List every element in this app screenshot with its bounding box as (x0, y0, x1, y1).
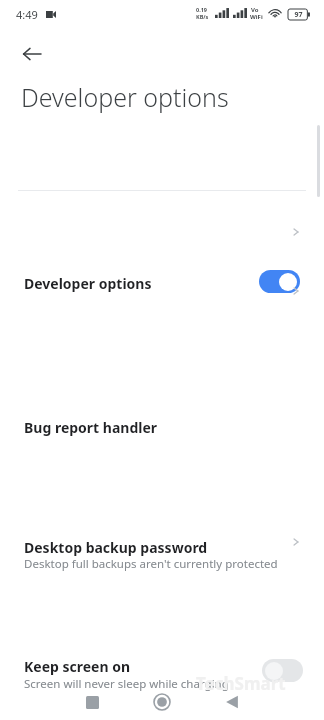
staticText: WiFi (250, 13, 263, 21)
button[interactable]: Desktop backup password (0, 262, 324, 320)
staticText: Developer options (21, 80, 229, 114)
button[interactable]: Back (14, 36, 50, 72)
staticText: 97 (294, 10, 303, 20)
staticText: Keep screen on (24, 657, 131, 676)
button[interactable]: Recents (74, 684, 110, 720)
button[interactable]: Developer options toggle, on (259, 270, 300, 293)
button[interactable]: Back (214, 684, 250, 720)
staticText: Bug report handler (24, 418, 158, 437)
staticText: Desktop full backups aren't currently pr… (24, 556, 278, 572)
staticText: Developer options (24, 274, 152, 293)
staticText: Screen will never sleep while charging (24, 676, 229, 692)
staticText: TechSmart (196, 672, 286, 695)
button[interactable]: Developer options (0, 128, 324, 180)
staticText: KB/s (196, 13, 209, 20)
button[interactable]: Bluetooth HCI snoop log filtering (0, 518, 324, 560)
button[interactable]: Skip screen lock (0, 386, 324, 454)
button[interactable]: Home (144, 684, 180, 720)
button[interactable]: Bluetooth HCI snoop log filtering PBAP (0, 566, 324, 632)
staticText: Desktop backup password (24, 538, 208, 557)
staticText: 0.19 (196, 6, 207, 13)
button[interactable]: Toggle, off (262, 659, 303, 682)
staticText: 4:49 (16, 7, 38, 22)
staticText: Vo (251, 6, 259, 14)
button[interactable]: Bluetooth HCI snoop log filtering MAP (0, 636, 324, 682)
